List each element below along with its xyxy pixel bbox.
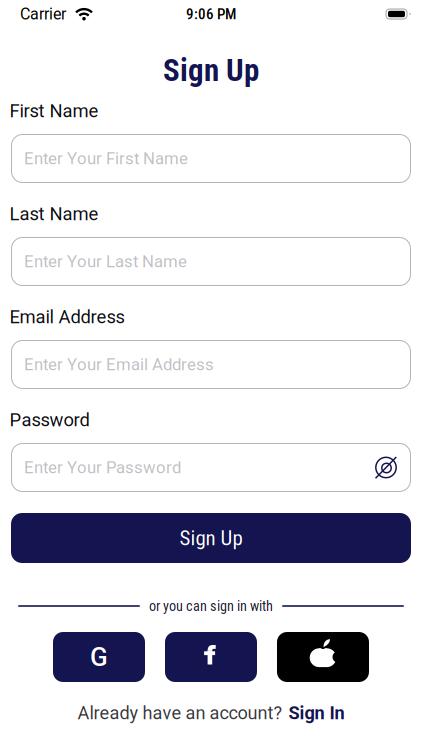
button[interactable] xyxy=(277,632,369,682)
staticText: G xyxy=(90,642,108,672)
button[interactable]: Already have an account? xyxy=(77,703,344,723)
staticText: Password xyxy=(9,409,89,431)
staticText: Sign Up xyxy=(163,52,259,89)
staticText: Email Address xyxy=(9,306,124,328)
staticText: Already have an account? xyxy=(77,702,282,724)
staticText: Sign In xyxy=(288,702,344,724)
button[interactable]: Sign Up xyxy=(11,513,411,563)
staticText: Sign Up xyxy=(179,526,242,550)
button[interactable]: Enter Your First Name xyxy=(11,134,411,183)
staticText: Carrier xyxy=(20,5,66,23)
button[interactable]: Enter Your Email Address xyxy=(11,340,411,389)
staticText: Enter Your Email Address xyxy=(24,355,214,374)
button[interactable]: Enter Your Last Name xyxy=(11,237,411,286)
staticText: Enter Your First Name xyxy=(24,149,188,168)
staticText: Enter Your Last Name xyxy=(24,252,187,271)
button[interactable]: G xyxy=(53,632,145,682)
staticText: or you can sign in with xyxy=(149,598,273,614)
staticText: 9:06 PM xyxy=(186,5,236,23)
staticText: Enter Your Password xyxy=(24,458,181,477)
button[interactable]: Enter Your Password xyxy=(11,443,411,492)
staticText: First Name xyxy=(9,100,98,122)
staticText: Last Name xyxy=(9,203,98,225)
button[interactable] xyxy=(165,632,257,682)
